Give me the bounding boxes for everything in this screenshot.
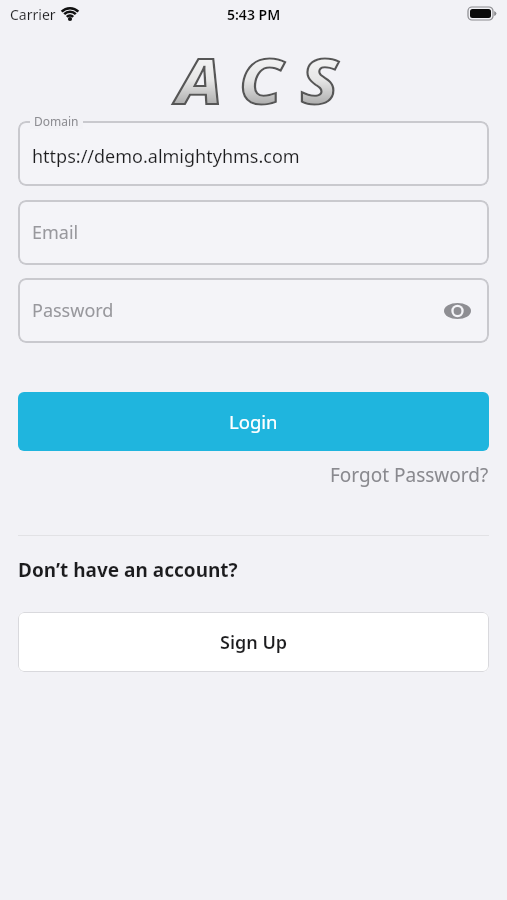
staticText: Don’t have an account?	[18, 557, 238, 583]
button[interactable]: Email	[18, 200, 489, 265]
staticText: Password	[32, 298, 114, 323]
button[interactable]: Password	[18, 278, 489, 343]
staticText: Carrier	[10, 5, 56, 24]
staticText: Sign Up	[220, 630, 288, 655]
staticText: Forgot Password?	[330, 462, 489, 488]
button[interactable]: Forgot Password?	[0, 462, 489, 488]
staticText: ACS	[177, 38, 356, 122]
staticText: Email	[32, 220, 79, 245]
button[interactable]: https://demo.almightyhms.com	[18, 121, 489, 186]
button[interactable]: Login	[18, 392, 489, 451]
staticText: 5:43 PM	[227, 5, 281, 24]
button[interactable]: Sign Up	[18, 612, 489, 672]
staticText: https://demo.almightyhms.com	[32, 144, 300, 169]
staticText: ACS	[177, 38, 356, 122]
staticText: Login	[229, 409, 278, 434]
staticText: Domain	[34, 113, 79, 129]
